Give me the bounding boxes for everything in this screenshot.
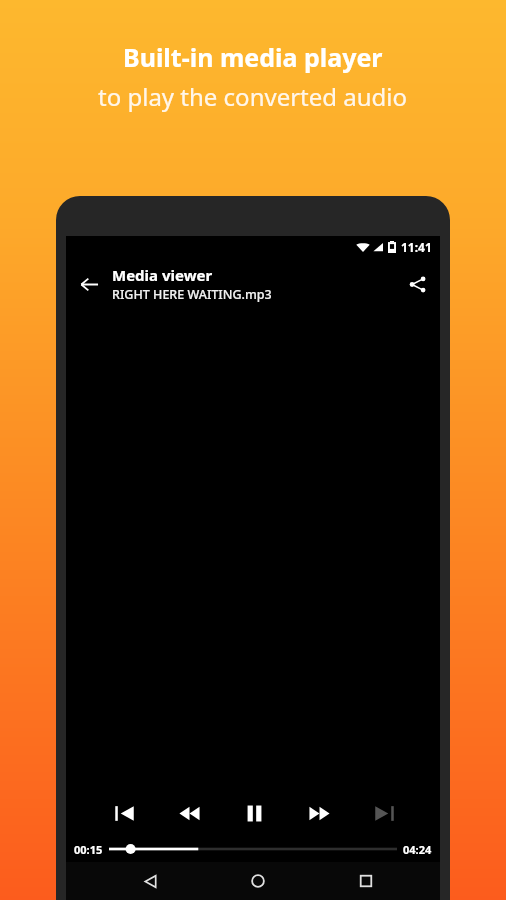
staticText: Built-in media player (123, 40, 383, 74)
button[interactable]: Skip to next (364, 793, 404, 833)
staticText: Media viewer (112, 265, 213, 285)
staticText: 00:15 (74, 842, 103, 857)
staticText: 04:24 (403, 842, 432, 857)
staticText: to play the converted audio (98, 80, 408, 113)
staticText: 11:41 (401, 239, 432, 255)
button[interactable]: Recent apps (349, 864, 383, 898)
staticText: RIGHT HERE WAITING.mp3 (112, 286, 272, 303)
button[interactable]: Rewind (169, 793, 209, 833)
button[interactable]: Navigate up (66, 261, 112, 307)
button[interactable]: Pause (234, 793, 274, 833)
button[interactable]: Fast forward (299, 793, 339, 833)
button[interactable]: Share (394, 261, 440, 307)
button[interactable]: Back (133, 864, 167, 898)
button[interactable]: Home (241, 864, 275, 898)
button[interactable]: Media viewer (112, 265, 394, 303)
button[interactable]: Seek bar (109, 838, 397, 860)
button[interactable]: Skip to previous (104, 793, 144, 833)
